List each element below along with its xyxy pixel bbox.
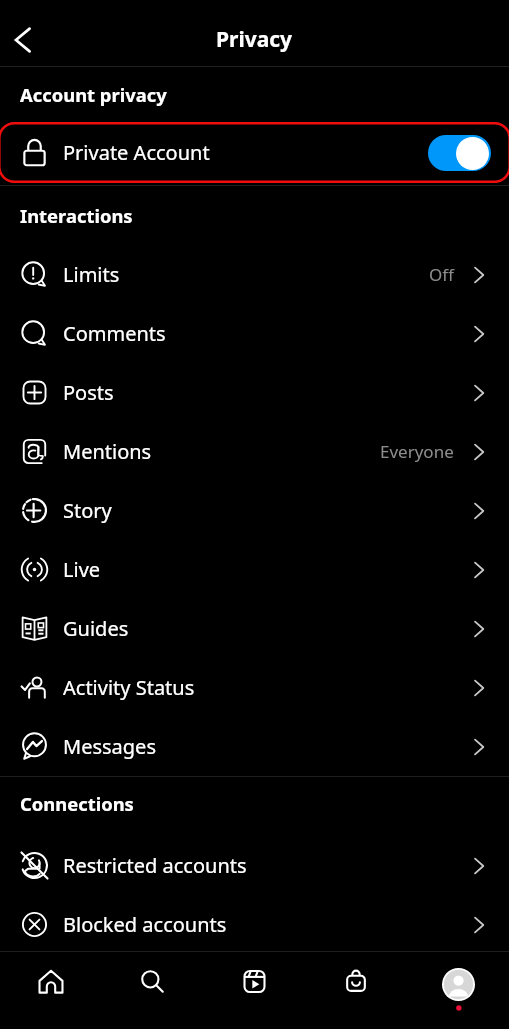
button[interactable]: Activity Status (0, 658, 509, 717)
button[interactable]: Reels (203, 952, 305, 1029)
button[interactable]: Limits (0, 245, 509, 304)
button[interactable]: Story (0, 481, 509, 540)
staticText: Restricted accounts (63, 852, 247, 879)
staticText: Interactions (20, 203, 133, 228)
staticText: Privacy (216, 25, 293, 54)
staticText: Connections (20, 791, 134, 816)
staticText: Messages (63, 733, 156, 760)
button[interactable]: Shop (305, 952, 407, 1029)
staticText: Activity Status (63, 674, 195, 701)
button[interactable]: Search (101, 952, 203, 1029)
button[interactable]: Posts (0, 363, 509, 422)
button[interactable]: Comments (0, 304, 509, 363)
button[interactable]: Private Account (0, 122, 509, 183)
button[interactable]: Profile (407, 952, 509, 1029)
button[interactable]: Back (3, 20, 43, 60)
button[interactable]: Guides (0, 599, 509, 658)
button[interactable]: Mentions (0, 422, 509, 481)
staticText: Blocked accounts (63, 911, 227, 938)
staticText: Private Account (63, 139, 210, 166)
staticText: Mentions (63, 438, 152, 465)
staticText: Guides (63, 615, 129, 642)
button[interactable]: Blocked accounts (0, 895, 509, 954)
staticText: Off (429, 263, 454, 286)
staticText: Account privacy (20, 82, 167, 107)
staticText: Live (63, 556, 101, 583)
button[interactable]: Messages (0, 717, 509, 776)
staticText: Story (63, 497, 112, 524)
button[interactable]: Private account toggle (428, 135, 491, 171)
button[interactable]: Restricted accounts (0, 836, 509, 895)
staticText: Limits (63, 261, 120, 288)
staticText: Comments (63, 320, 166, 347)
staticText: Everyone (380, 440, 454, 463)
staticText: Posts (63, 379, 114, 406)
button[interactable]: Live (0, 540, 509, 599)
button[interactable]: Home (0, 952, 101, 1029)
